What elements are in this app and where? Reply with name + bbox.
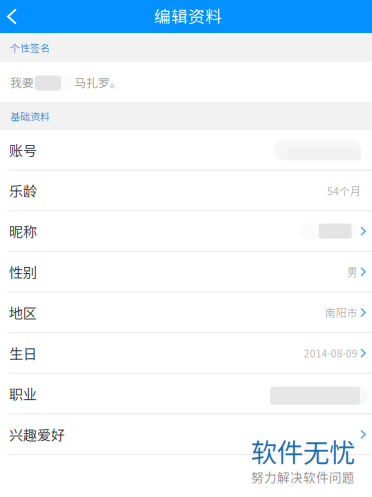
button[interactable]: 兴趣爱好: [0, 414, 372, 455]
staticText: 生日: [9, 343, 37, 363]
staticText: 马扎罗。: [74, 73, 122, 91]
staticText: 南阳市: [325, 305, 358, 320]
button[interactable]: 乐龄: [0, 171, 372, 211]
staticText: 基础资料: [10, 109, 50, 123]
staticText: 我要: [10, 73, 34, 91]
staticText: 职业: [9, 384, 37, 404]
button[interactable]: Back: [0, 0, 42, 33]
button[interactable]: 地区: [0, 293, 372, 333]
staticText: 昵称: [9, 221, 37, 241]
button[interactable]: 昵称: [0, 211, 372, 252]
button[interactable]: 账号: [0, 130, 372, 171]
staticText: 个性签名: [10, 40, 50, 55]
button[interactable]: 我要: [0, 62, 372, 102]
staticText: 账号: [9, 140, 37, 160]
staticText: 努力解决软件问题: [251, 468, 355, 486]
staticText: 性别: [9, 262, 37, 282]
button[interactable]: 生日: [0, 333, 372, 374]
button[interactable]: 性别: [0, 252, 372, 293]
staticText: 编辑资料: [154, 3, 222, 27]
staticText: 软件无忧: [251, 432, 355, 470]
staticText: 兴趣爱好: [9, 424, 65, 444]
button[interactable]: 职业: [0, 374, 372, 414]
staticText: 男: [347, 264, 358, 279]
staticText: 乐龄: [9, 180, 37, 201]
staticText: 地区: [9, 302, 37, 323]
staticText: 2014-08-09: [304, 346, 358, 360]
staticText: 54个月: [327, 183, 361, 198]
